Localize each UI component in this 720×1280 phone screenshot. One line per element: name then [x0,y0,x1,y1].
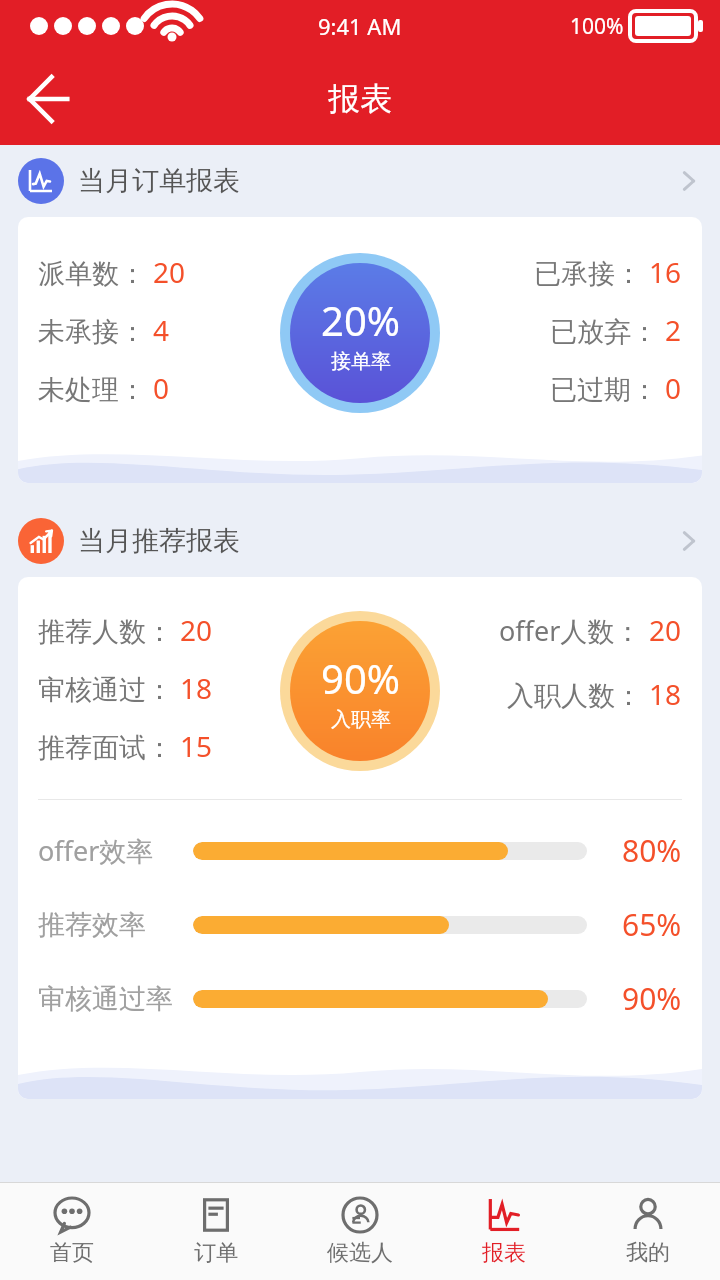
staticText: 报表 [328,79,392,119]
staticText: 订单 [194,1239,238,1267]
staticText: 当月推荐报表 [78,524,240,558]
button[interactable]: 当月推荐报表 [18,505,702,577]
staticText: offer人数： [499,612,642,649]
staticText: 审核通过： [38,673,173,707]
button[interactable]: Back [12,63,84,135]
staticText: 65% [622,904,682,945]
staticText: 4 [153,311,170,349]
staticText: 20 [153,253,186,291]
staticText: 审核通过率 [38,982,173,1016]
staticText: 2 [665,311,682,349]
staticText: 20 [649,611,682,649]
button[interactable]: 派单数： [18,217,702,483]
staticText: 16 [649,253,682,291]
button[interactable]: 首页 [0,1183,144,1280]
button[interactable]: 候选人 [288,1183,432,1280]
staticText: 0 [153,369,170,407]
staticText: 15 [180,727,213,765]
button[interactable]: 订单 [144,1183,288,1280]
staticText: 入职率 [331,707,391,732]
staticText: offer效率 [38,832,154,869]
staticText: 未处理： [38,373,146,407]
staticText: 未承接： [38,315,146,349]
button[interactable]: 报表 [432,1183,576,1280]
staticText: 18 [649,675,682,713]
staticText: 派单数： [38,257,146,291]
staticText: 9:41 AM [318,11,402,41]
staticText: 推荐面试： [38,731,173,765]
staticText: 候选人 [327,1239,393,1267]
staticText: 20% [321,293,400,347]
staticText: 18 [180,669,213,707]
staticText: 90% [622,978,682,1019]
staticText: 已放弃： [550,315,658,349]
staticText: 80% [622,830,682,871]
staticText: 已承接： [534,257,642,291]
button[interactable]: 推荐人数： [18,577,702,1099]
staticText: 20 [180,611,213,649]
staticText: 接单率 [331,349,391,374]
staticText: 入职人数： [507,679,642,713]
staticText: 推荐效率 [38,908,146,942]
staticText: 当月订单报表 [78,164,240,198]
staticText: 90% [321,651,400,705]
staticText: 首页 [50,1239,94,1267]
staticText: 推荐人数： [38,615,173,649]
staticText: 我的 [626,1239,670,1267]
button[interactable]: 我的 [576,1183,720,1280]
staticText: 报表 [482,1239,526,1267]
staticText: 已过期： [550,373,658,407]
staticText: 100% [570,12,624,41]
button[interactable]: 当月订单报表 [18,145,702,217]
staticText: 0 [665,369,682,407]
